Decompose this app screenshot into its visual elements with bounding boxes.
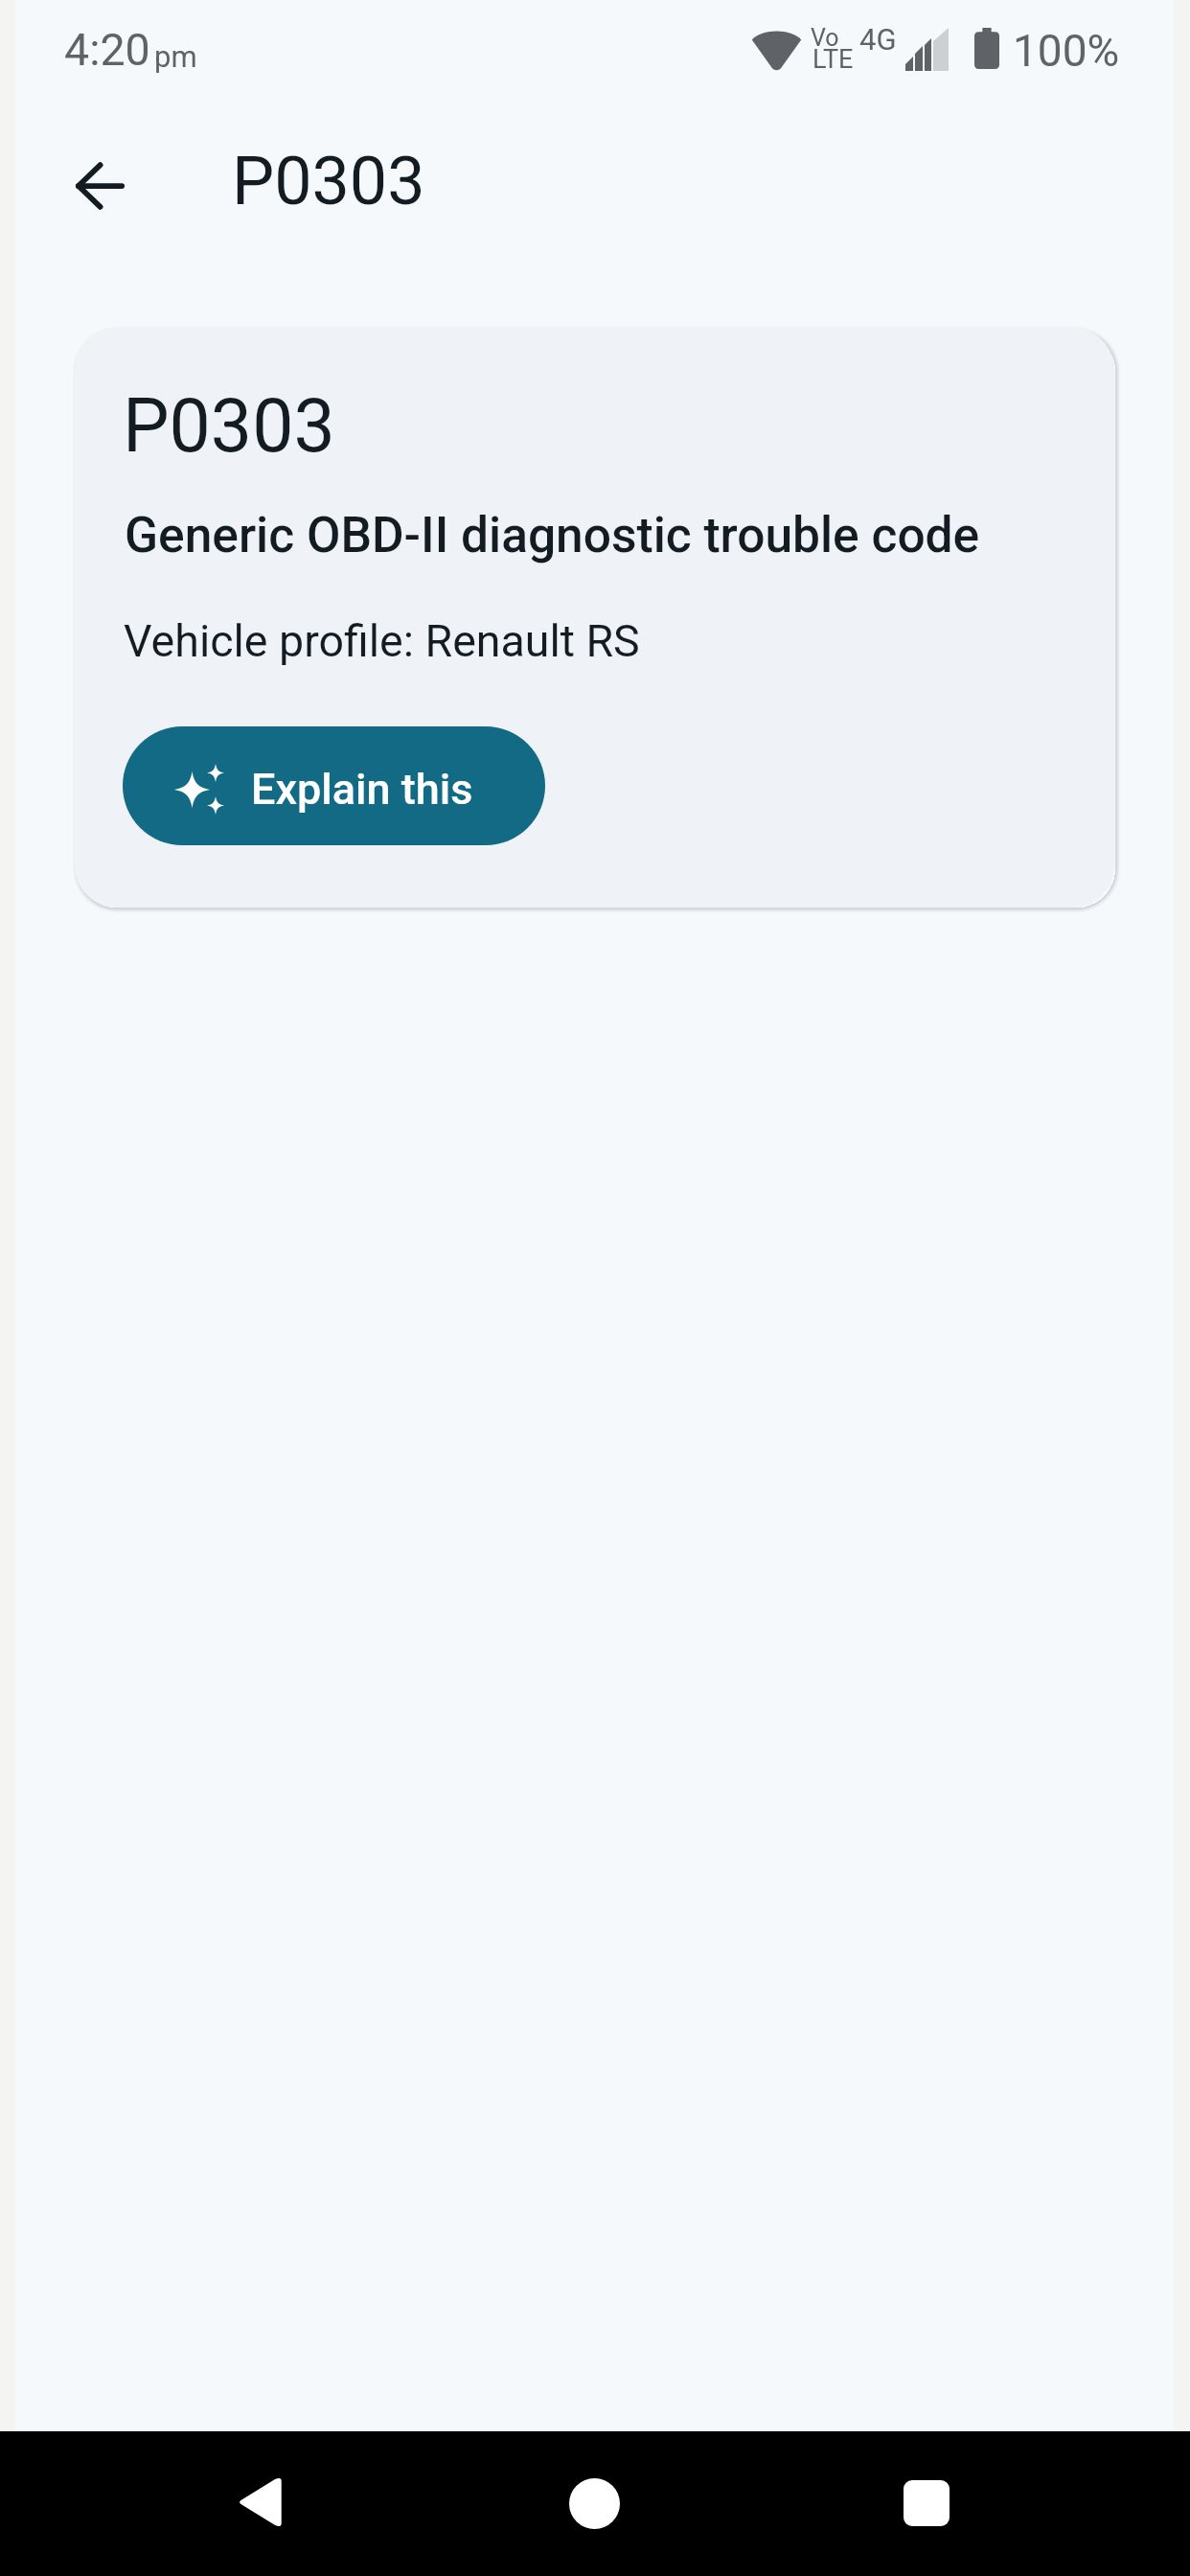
staticText: P0303	[232, 142, 425, 220]
button[interactable]: P0303	[75, 328, 1114, 908]
staticText: P0303	[123, 383, 335, 470]
button[interactable]: Recent apps	[879, 2455, 974, 2551]
staticText: 4:20	[64, 24, 150, 76]
staticText: 100%	[1013, 25, 1120, 77]
staticText: Generic OBD-II diagnostic trouble code	[125, 506, 980, 563]
button[interactable]: Home	[546, 2455, 642, 2551]
staticText: 4G	[859, 22, 897, 57]
button[interactable]: Explain this	[123, 726, 545, 845]
staticText: Vo	[811, 24, 839, 52]
button[interactable]: Back	[213, 2454, 309, 2550]
staticText: LTE	[812, 44, 854, 75]
staticText: Vehicle profile: Renault RS	[124, 615, 640, 667]
button[interactable]: Back	[50, 136, 149, 236]
staticText: pm	[154, 39, 197, 74]
staticText: Explain this	[251, 764, 473, 815]
